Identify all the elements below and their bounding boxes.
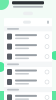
button[interactable] bbox=[4, 77, 52, 87]
button[interactable] bbox=[4, 52, 52, 62]
button[interactable] bbox=[4, 92, 52, 100]
button[interactable] bbox=[4, 67, 52, 77]
button[interactable]: More options bbox=[47, 21, 49, 24]
button[interactable] bbox=[4, 32, 52, 42]
button[interactable] bbox=[4, 42, 52, 52]
